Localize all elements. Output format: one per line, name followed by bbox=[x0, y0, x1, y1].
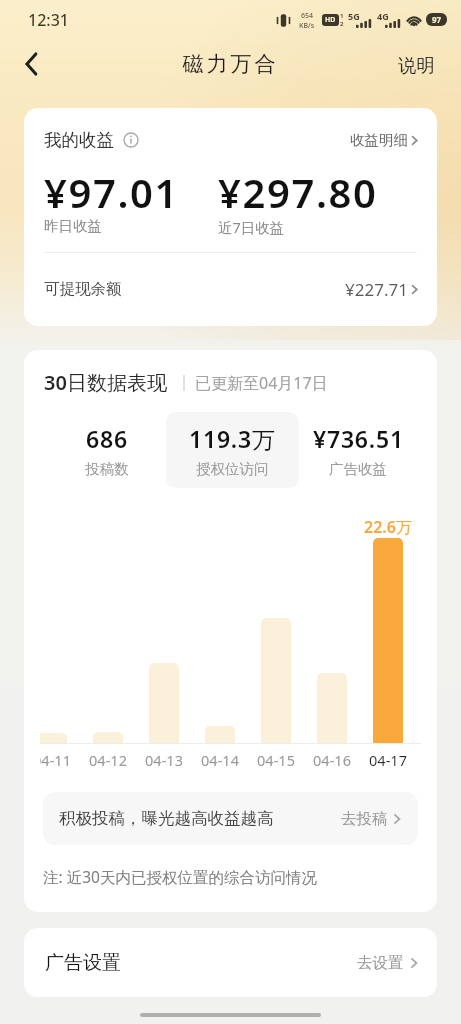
staticText: 去设置 bbox=[357, 953, 404, 973]
button[interactable]: 积极投稿，曝光越高收益越高 bbox=[59, 792, 404, 845]
staticText: 119.3万 bbox=[189, 423, 276, 454]
button[interactable] bbox=[20, 52, 44, 76]
staticText: 4G bbox=[377, 10, 389, 22]
staticText: 授权位访问 bbox=[196, 460, 269, 478]
staticText: ¥297.80 bbox=[218, 165, 378, 219]
staticText: 04-17 bbox=[360, 750, 416, 770]
staticText: ¥97.01 bbox=[44, 165, 180, 219]
button[interactable]: 广告设置 bbox=[45, 928, 421, 997]
button[interactable]: 说明 bbox=[398, 54, 435, 77]
staticText: 5G bbox=[348, 10, 360, 22]
staticText: 广告设置 bbox=[45, 951, 121, 975]
staticText: 04-12 bbox=[80, 750, 136, 770]
staticText: 04-13 bbox=[136, 750, 192, 770]
staticText: 04-15 bbox=[248, 750, 304, 770]
staticText: 04-16 bbox=[304, 750, 360, 770]
staticText: 投稿数 bbox=[85, 460, 129, 478]
staticText: 可提现余额 bbox=[44, 279, 122, 299]
staticText: 22.6万 bbox=[358, 516, 418, 538]
staticText: 654 bbox=[301, 11, 314, 21]
staticText: 30日数据表现 bbox=[44, 369, 167, 396]
staticText: 去投稿 bbox=[341, 809, 388, 829]
staticText: 686 bbox=[86, 423, 128, 454]
staticText: 我的收益 bbox=[44, 129, 114, 151]
staticText: 磁力万合 bbox=[0, 51, 461, 77]
staticText: 广告收益 bbox=[329, 460, 387, 478]
staticText: 1 bbox=[340, 12, 344, 20]
staticText: HD bbox=[325, 15, 336, 25]
staticText: 近7日收益 bbox=[218, 217, 285, 237]
staticText: 收益明细 bbox=[350, 131, 408, 149]
staticText: 积极投稿，曝光越高收益越高 bbox=[59, 808, 274, 829]
staticText: 已更新至04月17日 bbox=[195, 372, 328, 394]
staticText: 04-11 bbox=[40, 750, 80, 770]
staticText: 12:31 bbox=[28, 9, 69, 31]
staticText: 昨日收益 bbox=[44, 217, 102, 235]
button[interactable]: 可提现余额 bbox=[44, 266, 421, 312]
staticText: KB/s bbox=[299, 21, 315, 31]
staticText: ¥736.51 bbox=[313, 423, 404, 454]
staticText: 04-14 bbox=[192, 750, 248, 770]
staticText: ¥227.71 bbox=[345, 278, 408, 301]
staticText: 97 bbox=[432, 14, 442, 25]
staticText: 注: 近30天内已授权位置的综合访问情况 bbox=[43, 866, 317, 887]
button[interactable]: 收益明细 bbox=[350, 131, 421, 149]
staticText: 2 bbox=[340, 20, 344, 28]
